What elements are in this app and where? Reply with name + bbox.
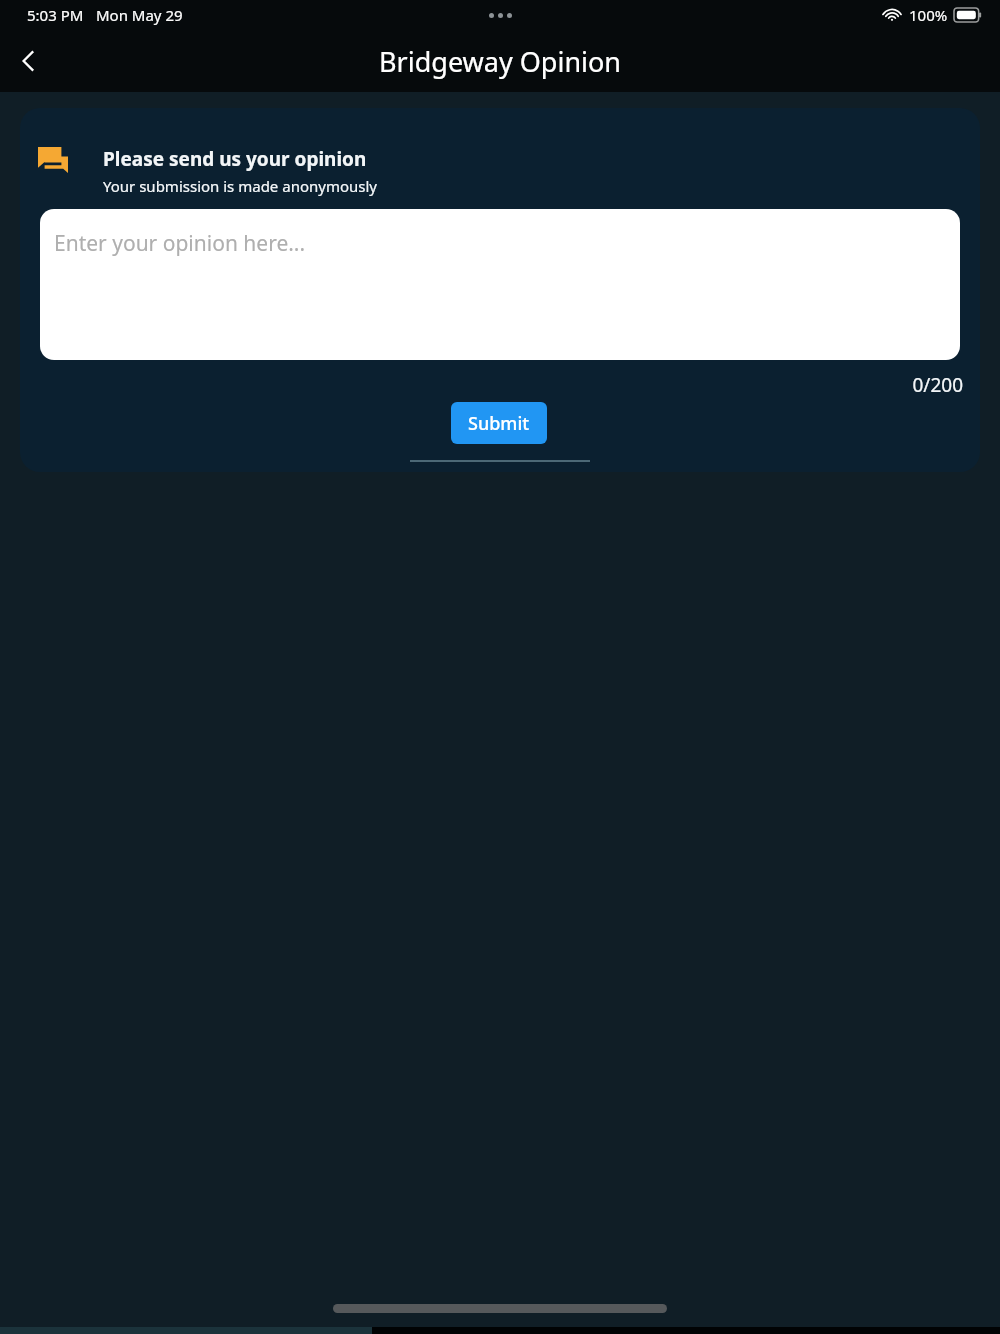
staticText: 100% [909, 5, 948, 25]
button[interactable]: Submit [451, 402, 547, 444]
staticText: 5:03 PM [27, 5, 84, 25]
staticText: Please send us your opinion [103, 146, 367, 172]
staticText: Submit [468, 411, 530, 436]
staticText: Your submission is made anonymously [103, 176, 377, 196]
button[interactable]: Back [0, 33, 56, 89]
staticText: Enter your opinion here... [54, 229, 306, 258]
other: Opinion [38, 147, 68, 173]
staticText: 0/200 [20, 372, 963, 398]
staticText: Bridgeway Opinion [379, 43, 622, 80]
staticText: Mon May 29 [96, 5, 183, 25]
button[interactable]: Enter your opinion here... [40, 209, 960, 360]
